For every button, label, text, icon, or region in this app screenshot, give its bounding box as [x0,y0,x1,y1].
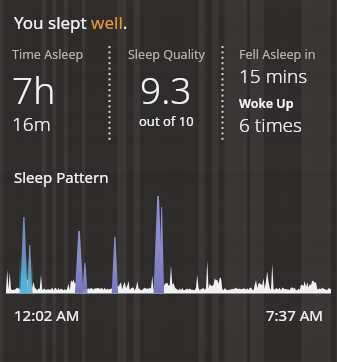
staticText: 6 times [239,112,303,138]
staticText: 7h [12,64,56,114]
staticText: Woke Up [239,95,294,112]
button[interactable]: Time Asleep [0,40,105,145]
staticText: 16m [12,111,51,137]
staticText: Sleep Pattern [14,167,109,187]
button[interactable]: Sleep Quality [114,40,218,145]
staticText: You slept well. [14,11,128,34]
button[interactable]: Fell Asleep in [227,40,337,145]
staticText: Time Asleep [12,46,84,63]
staticText: Fell Asleep in [239,46,316,63]
button[interactable]: Sleep Pattern [0,167,337,187]
staticText: out of 10 [139,112,194,130]
staticText: Sleep Quality [128,46,205,63]
staticText: 15 mins [239,63,308,89]
button[interactable]: You slept well. [0,0,337,40]
staticText: 9.3 [140,64,192,114]
staticText: 12:02 AM [14,305,80,325]
staticText: 7:37 AM [266,305,323,325]
button[interactable]: Sleep pattern graph [0,199,337,299]
